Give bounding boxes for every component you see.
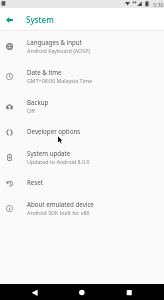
staticText: Backup — [27, 98, 49, 106]
staticText: About emulated device — [27, 200, 94, 208]
button[interactable]: Developer options — [0, 121, 164, 142]
staticText: Android Keyboard (AOSP) — [27, 47, 90, 54]
button[interactable]: Languages & input — [0, 31, 164, 61]
staticText: 5:30 — [153, 1, 164, 8]
button[interactable]: Reset — [0, 172, 164, 193]
staticText: Languages & input — [27, 38, 82, 46]
button[interactable]: Backup — [0, 91, 164, 121]
button[interactable]: Date & time — [0, 61, 164, 91]
staticText: Android SDK built for x86 — [27, 209, 90, 216]
staticText: Updated to Android 8.0.0 — [27, 158, 90, 165]
staticText: System — [26, 14, 54, 25]
button[interactable]: Home — [67, 284, 96, 300]
staticText: System update — [27, 149, 71, 157]
button[interactable]: About emulated device — [0, 193, 164, 223]
button[interactable]: Back — [20, 284, 49, 300]
staticText: GMT+08:00 Malaysia Time — [27, 77, 92, 84]
staticText: Date & time — [27, 68, 62, 76]
staticText: Reset — [27, 178, 44, 186]
button[interactable]: Navigate up — [0, 8, 19, 31]
staticText: Off — [27, 107, 35, 114]
button[interactable]: Recent apps — [115, 284, 144, 300]
staticText: Developer options — [27, 127, 81, 135]
button[interactable]: System update — [0, 142, 164, 172]
